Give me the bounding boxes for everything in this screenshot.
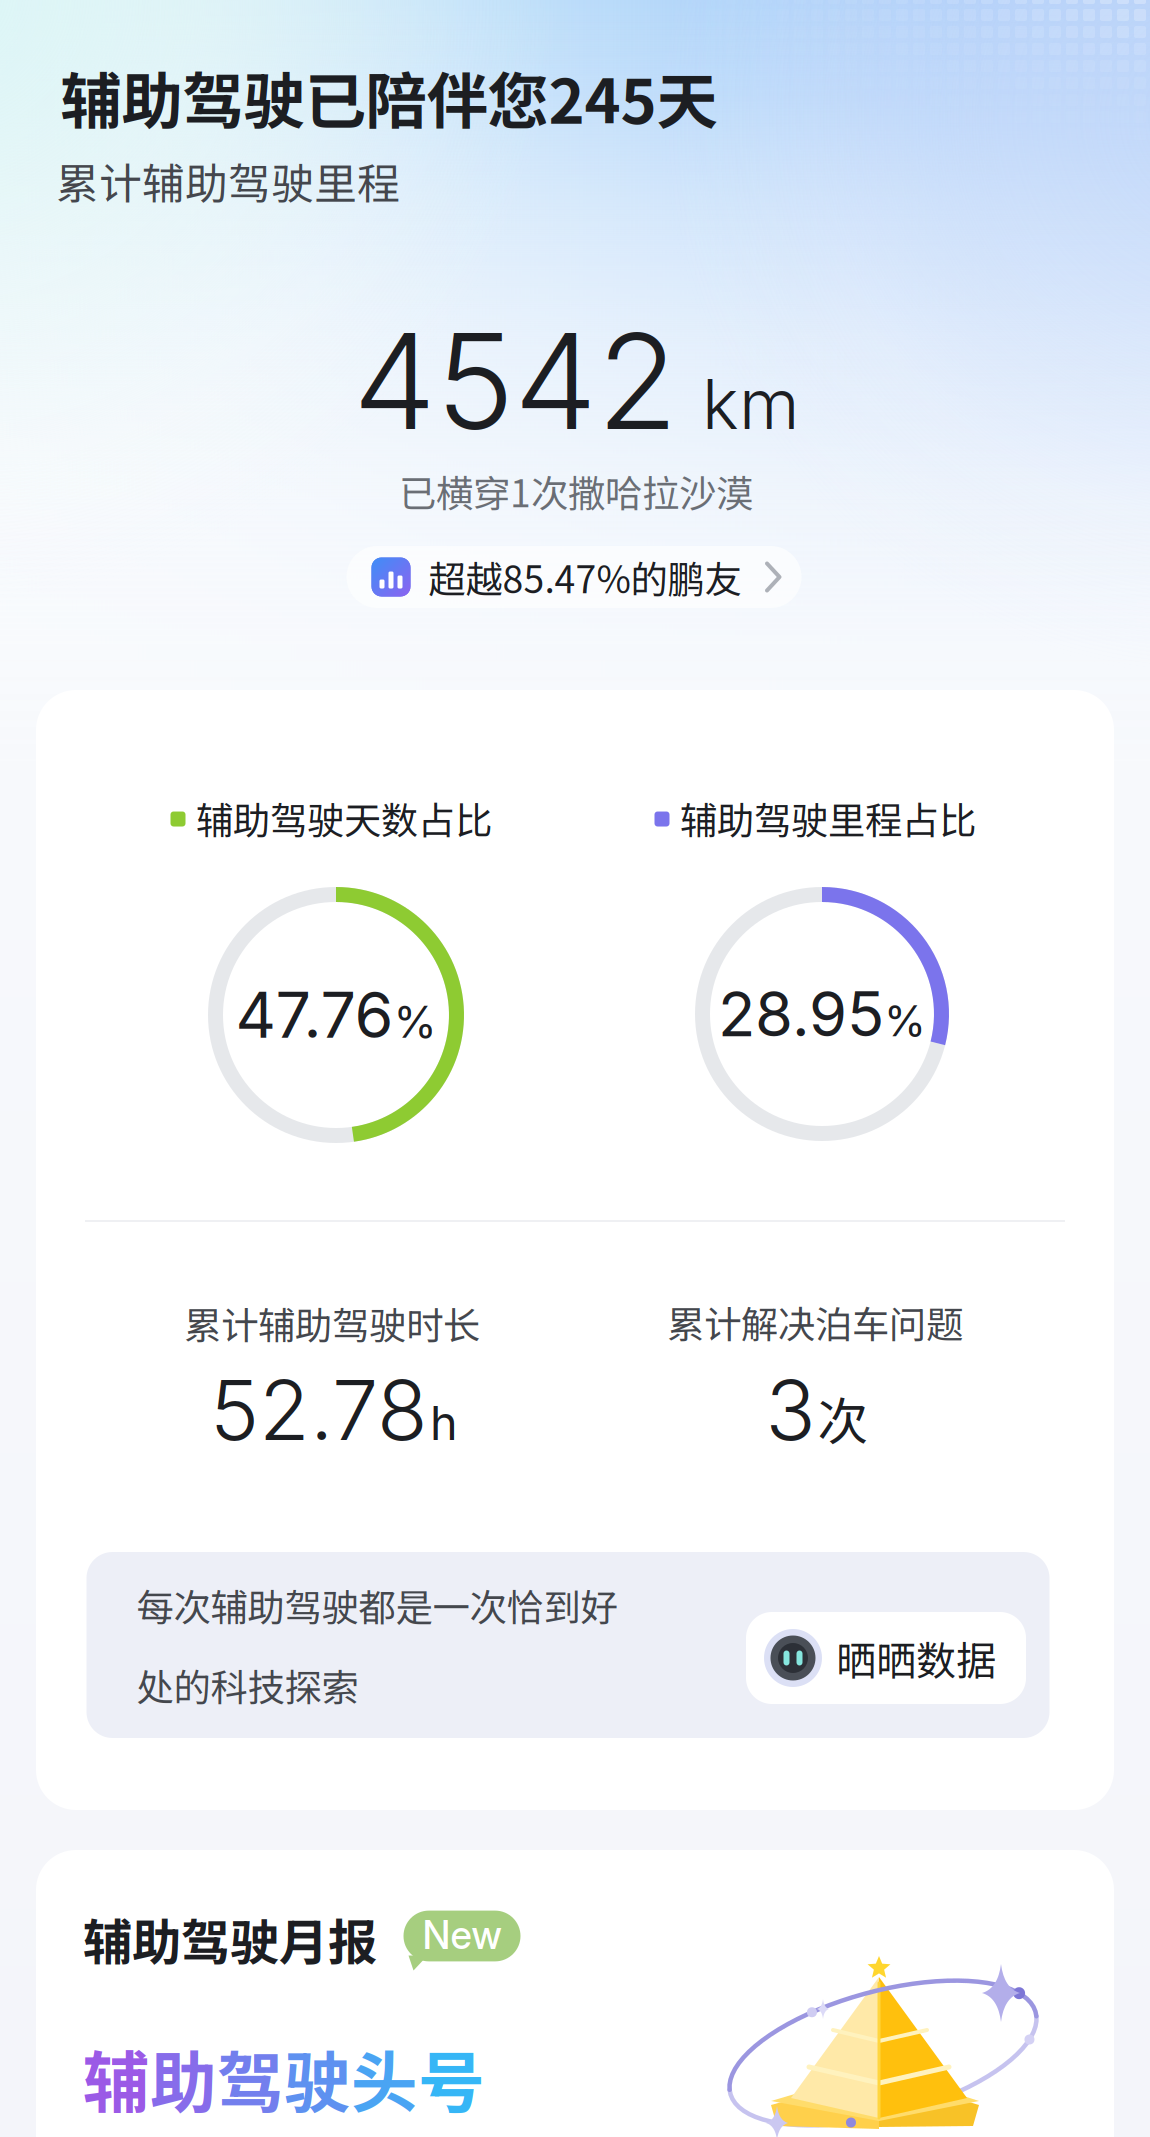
staticText: 次	[817, 1381, 868, 1455]
staticText: %	[884, 995, 926, 1047]
staticText: 47.76	[235, 977, 393, 1053]
staticText: 累计辅助驾驶时长	[184, 1296, 480, 1350]
staticText: 辅助驾驶已陪伴您245天	[60, 53, 717, 141]
staticText: 累计解决泊车问题	[667, 1295, 963, 1349]
staticText: km	[702, 362, 799, 446]
staticText: %	[393, 995, 436, 1048]
staticText: 晒晒数据	[836, 1629, 996, 1687]
staticText: 28.95	[718, 977, 884, 1051]
staticText: 辅	[83, 2030, 150, 2126]
staticText: 助	[150, 2030, 217, 2126]
staticText: 已横穿1次撒哈拉沙漠	[399, 464, 753, 518]
staticText: 超越85.47%的鹏友	[428, 550, 741, 604]
button[interactable]: 晒晒数据	[746, 1612, 1026, 1704]
staticText: h	[430, 1395, 458, 1451]
staticText: 4542	[353, 301, 678, 461]
staticText: 号	[418, 2030, 485, 2126]
staticText: 辅助驾驶里程占比	[680, 791, 976, 845]
staticText: 52.78	[210, 1360, 428, 1460]
staticText: 头	[351, 2030, 418, 2126]
staticText: 驾	[217, 2030, 284, 2126]
button[interactable]: 超越85.47%的鹏友	[346, 546, 801, 608]
staticText: 辅助驾驶天数占比	[196, 791, 492, 845]
staticText: 3	[765, 1360, 815, 1460]
staticText: 辅助驾驶月报	[83, 1903, 377, 1975]
staticText: 处的科技探索	[136, 1658, 358, 1712]
staticText: New	[422, 1912, 501, 1958]
staticText: 每次辅助驾驶都是一次恰到好	[136, 1578, 617, 1632]
staticText: 累计辅助驾驶里程	[56, 150, 400, 212]
staticText: 驶	[284, 2030, 351, 2126]
